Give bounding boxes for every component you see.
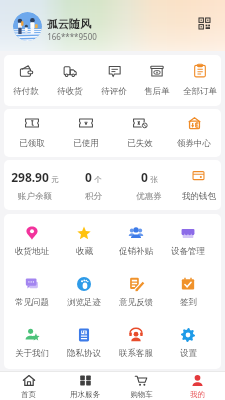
staticText: 收货地址 bbox=[15, 246, 49, 257]
button[interactable]: 首页 bbox=[0, 372, 57, 400]
staticText: 个 bbox=[94, 175, 102, 184]
staticText: 联系客服 bbox=[119, 348, 153, 357]
staticText: 待收货 bbox=[57, 86, 83, 97]
button[interactable]: 待评价 bbox=[92, 55, 135, 106]
staticText: 首页 bbox=[21, 390, 36, 399]
staticText: 待评价 bbox=[101, 86, 127, 97]
staticText: 已领取 bbox=[19, 138, 45, 149]
staticText: 促销补贴 bbox=[119, 246, 153, 257]
staticText: 我的钱包 bbox=[182, 191, 216, 202]
button[interactable]: 用水服务 bbox=[57, 372, 113, 400]
staticText: 298.90 bbox=[11, 169, 49, 185]
button[interactable]: 收货地址 bbox=[6, 226, 58, 277]
button[interactable]: 领券中心 bbox=[167, 109, 221, 157]
staticText: 隐私协议 bbox=[67, 348, 101, 357]
button[interactable]: 收藏 bbox=[58, 226, 110, 277]
staticText: 设置 bbox=[180, 348, 197, 357]
staticText: 账户余额 bbox=[18, 191, 52, 202]
staticText: 意见反馈 bbox=[119, 297, 153, 308]
button[interactable]: 浏览足迹 bbox=[58, 277, 110, 328]
staticText: 常见问题 bbox=[15, 297, 49, 308]
staticText: 优惠券 bbox=[136, 191, 162, 202]
button[interactable]: 我的 bbox=[169, 372, 225, 400]
button[interactable]: 设备管理 bbox=[162, 226, 214, 277]
staticText: 元 bbox=[51, 175, 59, 184]
button[interactable]: 待收货 bbox=[48, 55, 92, 106]
staticText: 张 bbox=[150, 175, 158, 184]
button[interactable]: 已领取 bbox=[4, 109, 59, 157]
button[interactable]: 关于我们 bbox=[6, 328, 58, 357]
button[interactable]: 已使用 bbox=[59, 109, 113, 157]
staticText: 0 bbox=[141, 169, 148, 185]
staticText: 0 bbox=[85, 169, 92, 185]
staticText: 我的 bbox=[190, 390, 205, 399]
button[interactable]: 已失效 bbox=[113, 109, 167, 157]
staticText: 已失效 bbox=[127, 138, 153, 149]
button[interactable]: 我的钱包 bbox=[176, 160, 221, 210]
staticText: 领券中心 bbox=[177, 138, 211, 149]
button[interactable]: 联系客服 bbox=[110, 328, 162, 357]
button[interactable]: 购物车 bbox=[113, 372, 169, 400]
staticText: 购物车 bbox=[130, 390, 153, 399]
staticText: 设备管理 bbox=[171, 246, 205, 257]
button[interactable]: 签到 bbox=[162, 277, 214, 328]
staticText: 浏览足迹 bbox=[67, 297, 101, 308]
button[interactable]: 隐私协议 bbox=[58, 328, 110, 357]
staticText: 166****9500 bbox=[47, 31, 97, 42]
staticText: 积分 bbox=[85, 191, 102, 202]
staticText: 全部订单 bbox=[183, 86, 217, 97]
staticText: 已使用 bbox=[73, 138, 99, 149]
button[interactable]: 设置 bbox=[162, 328, 214, 357]
button[interactable]: 0 bbox=[122, 160, 176, 210]
button[interactable]: 扫一扫二维码 bbox=[199, 18, 210, 29]
staticText: 关于我们 bbox=[15, 348, 49, 357]
staticText: 签到 bbox=[180, 297, 197, 308]
button[interactable]: 头像 bbox=[13, 12, 42, 41]
staticText: 收藏 bbox=[76, 246, 93, 257]
button[interactable]: 意见反馈 bbox=[110, 277, 162, 328]
button[interactable]: 298.90 bbox=[5, 160, 65, 210]
staticText: 用水服务 bbox=[70, 390, 100, 399]
button[interactable]: 待付款 bbox=[4, 55, 48, 106]
button[interactable]: 售后单 bbox=[135, 55, 178, 106]
button[interactable]: 常见问题 bbox=[6, 277, 58, 328]
staticText: 孤云随风 bbox=[47, 17, 91, 31]
button[interactable]: 全部订单 bbox=[178, 55, 221, 106]
staticText: 售后单 bbox=[144, 86, 170, 97]
button[interactable]: 促销补贴 bbox=[110, 226, 162, 277]
staticText: 待付款 bbox=[13, 86, 39, 97]
button[interactable]: 0 bbox=[65, 160, 122, 210]
